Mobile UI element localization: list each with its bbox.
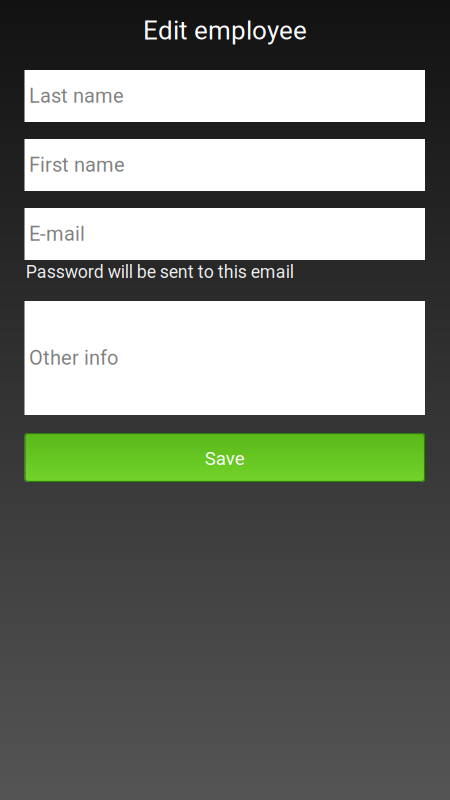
button[interactable]: Save [24, 433, 425, 482]
button[interactable]: First name [24, 139, 425, 191]
staticText: Edit employee [143, 15, 307, 46]
staticText: First name [29, 153, 125, 177]
button[interactable]: E-mail [24, 208, 425, 260]
button[interactable]: Other info [24, 301, 425, 415]
staticText: E-mail [29, 222, 85, 246]
staticText: Last name [29, 84, 124, 108]
button[interactable]: Last name [24, 70, 425, 122]
staticText: Password will be sent to this email [26, 262, 294, 282]
staticText: Save [205, 448, 245, 469]
staticText: Other info [29, 346, 118, 370]
